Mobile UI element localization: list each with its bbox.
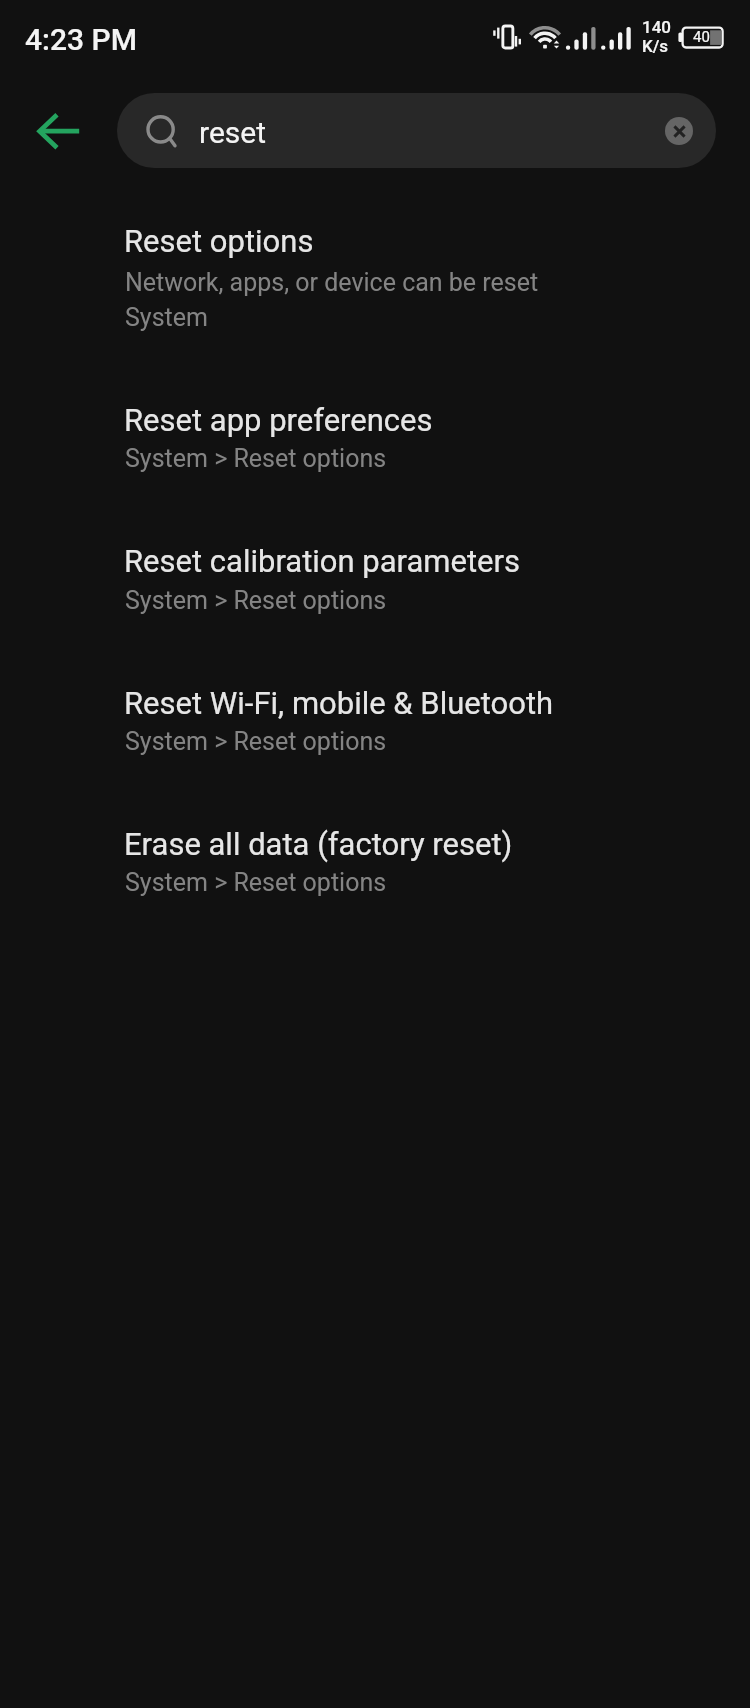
staticText: Network, apps, or device can be reset <box>125 268 539 297</box>
staticText: Erase all data (factory reset) <box>124 826 513 862</box>
staticText: Reset app preferences <box>124 402 433 438</box>
staticText: Reset Wi-Fi, mobile & Bluetooth <box>124 685 554 721</box>
staticText: System > Reset options <box>125 727 387 756</box>
button[interactable]: reset <box>117 93 716 168</box>
button[interactable]: Reset Wi-Fi, mobile & Bluetooth <box>0 643 750 784</box>
staticText: reset <box>199 115 267 150</box>
staticText: System <box>125 303 208 332</box>
staticText: K/s <box>642 36 669 56</box>
staticText: 140 <box>642 17 671 37</box>
button[interactable]: Reset app preferences <box>0 360 750 501</box>
button[interactable]: Reset calibration parameters <box>0 501 750 643</box>
button[interactable]: Navigate back <box>26 99 90 163</box>
staticText: Reset options <box>124 223 314 259</box>
staticText: 4:23 PM <box>25 22 137 57</box>
button[interactable]: Clear search query <box>665 117 693 145</box>
staticText: Reset calibration parameters <box>124 543 521 579</box>
staticText: 40 <box>693 28 710 46</box>
button[interactable]: Erase all data (factory reset) <box>0 784 750 926</box>
staticText: System > Reset options <box>125 868 387 897</box>
staticText: System > Reset options <box>125 586 387 615</box>
button[interactable]: Reset options <box>0 190 750 360</box>
staticText: System > Reset options <box>125 444 387 473</box>
